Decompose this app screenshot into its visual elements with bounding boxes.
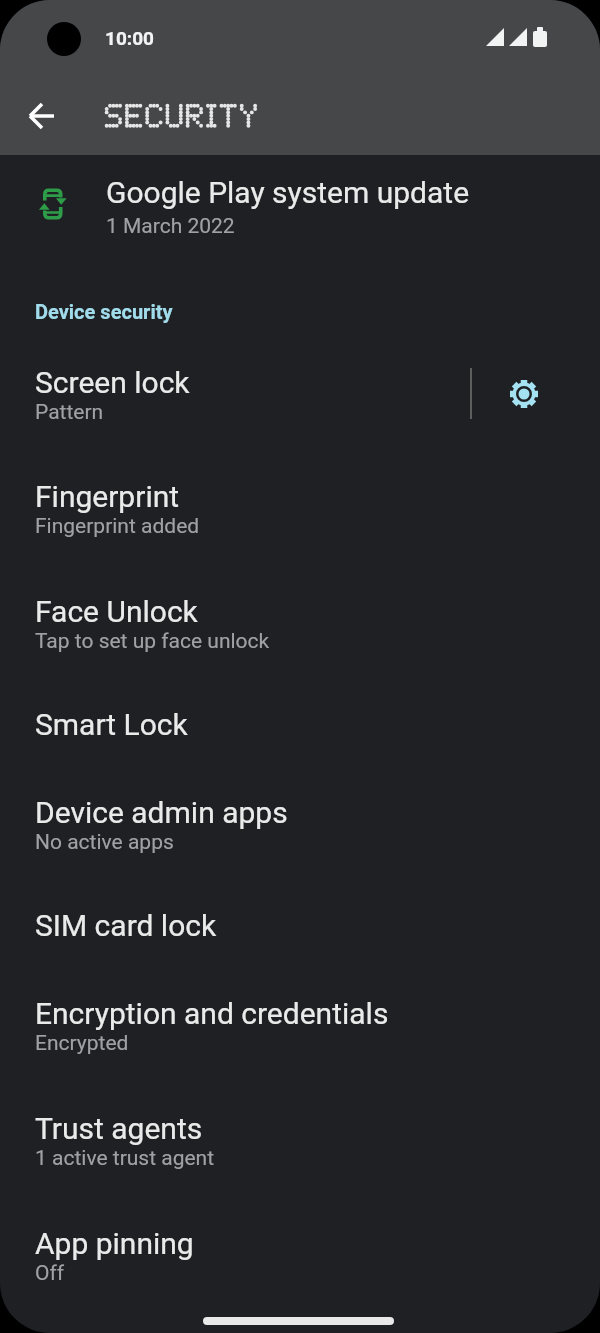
staticText: Screen lock [35,365,190,400]
staticText: SIM card lock [35,908,217,943]
staticText: Fingerprint [35,479,180,514]
staticText: App pinning [35,1226,194,1261]
staticText: Encryption and credentials [35,996,389,1031]
staticText: Face Unlock [35,594,198,629]
button[interactable]: Google Play system update [0,155,600,270]
button[interactable]: Trust agents [0,1083,600,1198]
staticText: 1 active trust agent [35,1146,215,1171]
staticText: Trust agents [35,1111,203,1146]
button[interactable]: Encryption and credentials [0,968,600,1083]
button[interactable]: Fingerprint [0,452,600,566]
staticText: 10:00 [105,27,154,49]
button[interactable] [18,92,66,140]
staticText: Device security [35,300,173,323]
button[interactable]: Device admin apps [0,767,600,882]
staticText: Smart Lock [35,707,188,742]
staticText: Google Play system update [106,175,470,210]
button[interactable] [496,366,552,422]
staticText: Device admin apps [35,795,288,830]
button[interactable]: Screen lock [0,337,600,452]
staticText: Pattern [35,400,104,425]
staticText: Encrypted [35,1031,129,1056]
button[interactable]: SIM card lock [0,882,600,968]
staticText: Tap to set up face unlock [35,629,270,654]
button[interactable]: App pinning [0,1198,600,1313]
button[interactable]: Smart Lock [0,681,600,767]
staticText: Fingerprint added [35,514,200,539]
staticText: Off [35,1261,65,1286]
staticText: 1 March 2022 [106,214,235,239]
button[interactable]: Face Unlock [0,566,600,681]
staticText: No active apps [35,830,174,855]
